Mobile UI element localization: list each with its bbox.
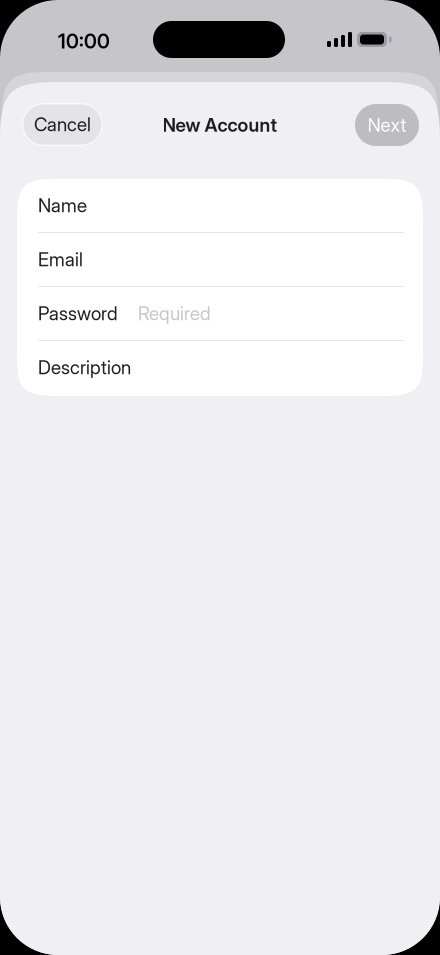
staticText: Next: [367, 114, 406, 136]
button[interactable]: Cancel: [22, 103, 103, 146]
staticText: Description: [38, 356, 131, 379]
button[interactable]: Password: [17, 287, 423, 341]
staticText: Password: [38, 302, 118, 325]
staticText: Cancel: [34, 113, 91, 136]
button[interactable]: Description: [17, 341, 423, 396]
button[interactable]: Email: [17, 233, 423, 287]
button[interactable]: Name: [17, 179, 423, 233]
staticText: Required: [138, 302, 211, 325]
staticText: Email: [38, 248, 83, 271]
button[interactable]: Next: [355, 104, 419, 146]
staticText: Name: [38, 194, 87, 217]
staticText: New Account: [162, 114, 277, 136]
staticText: 10:00: [58, 29, 110, 53]
